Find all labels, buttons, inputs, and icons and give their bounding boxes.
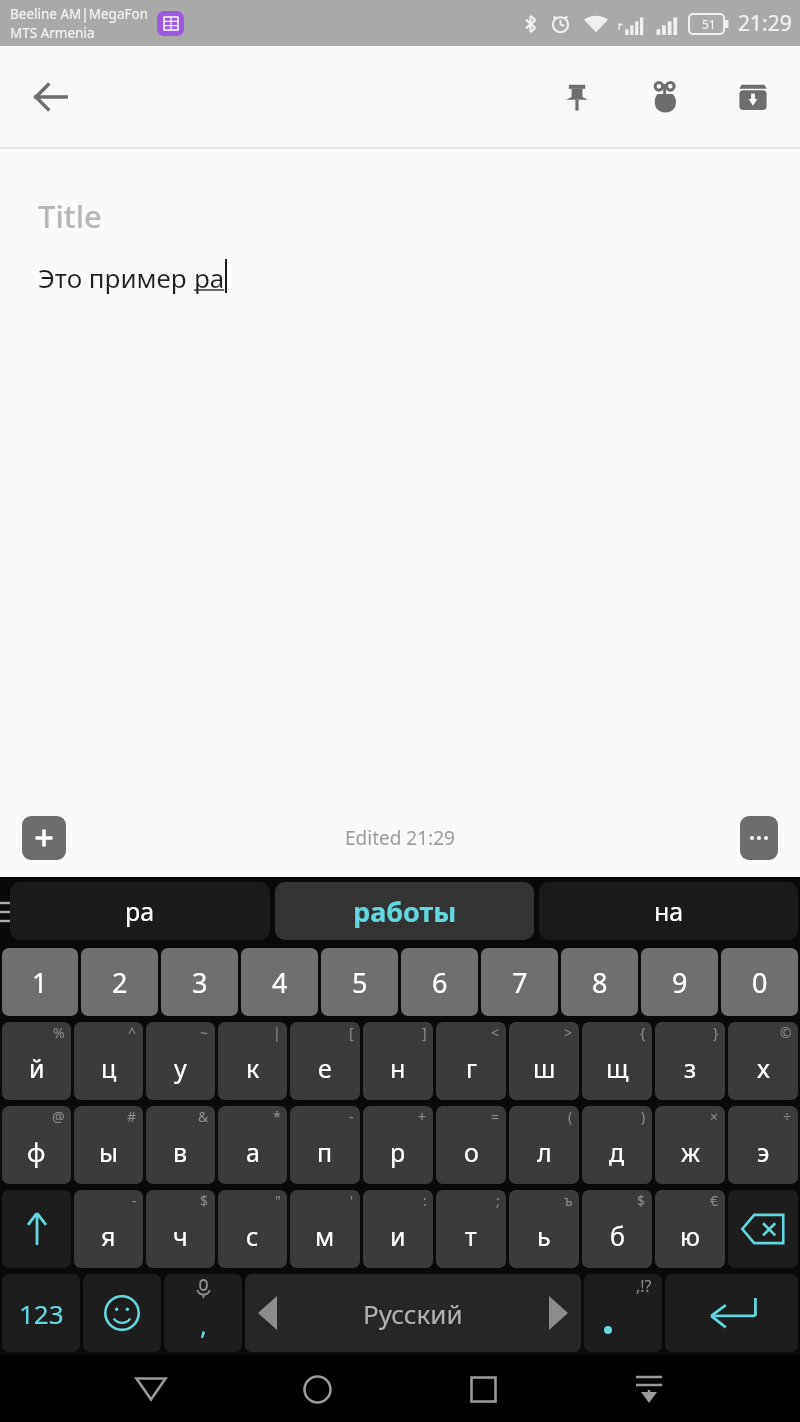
- button[interactable]: ,: [164, 1274, 242, 1352]
- button[interactable]: {: [582, 1022, 652, 1100]
- button[interactable]: Pin: [546, 66, 608, 128]
- button[interactable]: 7: [481, 948, 558, 1016]
- button[interactable]: $: [582, 1190, 652, 1268]
- button[interactable]: -: [74, 1190, 143, 1268]
- button[interactable]: Back: [120, 1358, 182, 1420]
- staticText: 0: [752, 964, 768, 1001]
- button[interactable]: 9: [641, 948, 718, 1016]
- staticText: *: [273, 1107, 281, 1126]
- button[interactable]: ]: [363, 1022, 433, 1100]
- staticText: ": [275, 1191, 281, 1210]
- button[interactable]: 0: [721, 948, 798, 1016]
- staticText: 1: [32, 964, 48, 1001]
- staticText: -: [349, 1107, 354, 1126]
- button[interactable]: ,!?: [584, 1274, 662, 1352]
- button[interactable]: на: [539, 882, 798, 940]
- button[interactable]: Recents: [452, 1358, 514, 1420]
- button[interactable]: &: [146, 1106, 215, 1184]
- staticText: €: [710, 1191, 719, 1210]
- staticText: о: [464, 1135, 479, 1169]
- button[interactable]: Shift: [2, 1190, 71, 1268]
- button[interactable]: ©: [728, 1022, 798, 1100]
- button[interactable]: €: [655, 1190, 725, 1268]
- staticText: р: [390, 1135, 406, 1169]
- button[interactable]: [: [290, 1022, 360, 1100]
- staticText: Title: [38, 195, 102, 237]
- button[interactable]: ^: [74, 1022, 143, 1100]
- staticText: с: [246, 1219, 259, 1253]
- button[interactable]: More options: [740, 816, 778, 860]
- button[interactable]: 6: [401, 948, 478, 1016]
- button[interactable]: 8: [561, 948, 638, 1016]
- staticText: 5: [352, 964, 368, 1001]
- staticText: 8: [592, 964, 608, 1001]
- button[interactable]: Add: [22, 816, 66, 860]
- button[interactable]: ;: [436, 1190, 506, 1268]
- button[interactable]: }: [655, 1022, 725, 1100]
- button[interactable]: #: [74, 1106, 143, 1184]
- button[interactable]: ~: [146, 1022, 215, 1100]
- staticText: е: [318, 1051, 332, 1085]
- button[interactable]: +: [363, 1106, 433, 1184]
- button[interactable]: 4: [241, 948, 318, 1016]
- staticText: $: [637, 1191, 646, 1210]
- button[interactable]: Back: [20, 66, 82, 128]
- button[interactable]: Reminder: [634, 66, 696, 128]
- button[interactable]: Backspace: [728, 1190, 798, 1268]
- staticText: э: [757, 1135, 770, 1169]
- button[interactable]: 123: [2, 1274, 80, 1352]
- staticText: на: [654, 894, 684, 928]
- button[interactable]: Title: [0, 149, 800, 799]
- button[interactable]: ÷: [728, 1106, 798, 1184]
- button[interactable]: Русский: [245, 1274, 581, 1352]
- staticText: ;: [496, 1191, 500, 1210]
- staticText: г: [466, 1051, 477, 1085]
- button[interactable]: >: [509, 1022, 579, 1100]
- staticText: 123: [19, 1296, 64, 1331]
- staticText: 9: [672, 964, 688, 1001]
- staticText: ]: [422, 1023, 427, 1042]
- button[interactable]: Enter: [665, 1274, 798, 1352]
- button[interactable]: %: [2, 1022, 71, 1100]
- button[interactable]: $: [146, 1190, 215, 1268]
- staticText: ÷: [783, 1107, 792, 1126]
- staticText: й: [29, 1051, 45, 1085]
- button[interactable]: =: [436, 1106, 506, 1184]
- staticText: ^: [128, 1023, 137, 1042]
- staticText: т: [465, 1219, 477, 1253]
- button[interactable]: ра: [10, 882, 270, 940]
- button[interactable]: |: [218, 1022, 287, 1100]
- button[interactable]: ×: [655, 1106, 725, 1184]
- button[interactable]: 3: [161, 948, 238, 1016]
- button[interactable]: ъ: [509, 1190, 579, 1268]
- staticText: MTS Armenia: [10, 24, 95, 42]
- staticText: ы: [99, 1135, 118, 1169]
- button[interactable]: Home: [286, 1358, 348, 1420]
- button[interactable]: -: [290, 1106, 360, 1184]
- button[interactable]: Archive: [722, 66, 784, 128]
- staticText: ~: [200, 1023, 209, 1042]
- button[interactable]: ": [218, 1190, 287, 1268]
- button[interactable]: 1: [2, 948, 78, 1016]
- button[interactable]: ): [582, 1106, 652, 1184]
- button[interactable]: <: [436, 1022, 506, 1100]
- button[interactable]: (: [509, 1106, 579, 1184]
- button[interactable]: *: [218, 1106, 287, 1184]
- staticText: ,: [200, 1307, 207, 1342]
- button[interactable]: работы: [275, 882, 534, 940]
- button[interactable]: @: [2, 1106, 71, 1184]
- staticText: щ: [606, 1051, 629, 1085]
- button[interactable]: Emoji: [83, 1274, 161, 1352]
- button[interactable]: ': [290, 1190, 360, 1268]
- button[interactable]: 5: [321, 948, 398, 1016]
- staticText: х: [757, 1051, 770, 1085]
- button[interactable]: 2: [81, 948, 158, 1016]
- staticText: Это пример: [38, 260, 194, 295]
- staticText: ,!?: [636, 1275, 652, 1297]
- staticText: б: [610, 1219, 625, 1253]
- button[interactable]: :: [363, 1190, 433, 1268]
- staticText: 2: [112, 964, 128, 1001]
- staticText: ш: [533, 1051, 556, 1085]
- button[interactable]: Hide keyboard: [618, 1358, 680, 1420]
- staticText: работы: [353, 893, 457, 930]
